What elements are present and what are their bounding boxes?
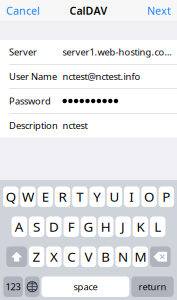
button[interactable]: H xyxy=(98,216,113,237)
button[interactable]: G xyxy=(81,216,96,237)
staticText: Q xyxy=(6,188,16,205)
staticText: L xyxy=(154,218,161,235)
button[interactable]: I xyxy=(124,186,139,207)
staticText: M xyxy=(134,248,146,265)
button[interactable]: Next keyboard xyxy=(25,276,39,297)
button[interactable]: C xyxy=(63,246,79,267)
button[interactable]: D xyxy=(46,216,62,237)
staticText: U xyxy=(109,188,119,205)
staticText: server1.web-hosting.com:… xyxy=(62,46,173,58)
button[interactable]: Z xyxy=(29,246,44,267)
staticText: V xyxy=(84,248,92,265)
staticText: S xyxy=(33,218,40,235)
button[interactable]: Shift xyxy=(6,246,27,267)
staticText: X xyxy=(50,248,58,265)
staticText: space xyxy=(73,280,97,293)
button[interactable]: Delete xyxy=(150,246,171,267)
button[interactable]: 123 xyxy=(3,276,23,297)
button[interactable]: O xyxy=(141,186,157,207)
staticText: F xyxy=(68,218,75,235)
button[interactable]: A xyxy=(12,216,27,237)
button[interactable]: space xyxy=(41,276,129,297)
button[interactable]: B xyxy=(98,246,113,267)
staticText: User Name xyxy=(9,70,57,83)
button[interactable]: L xyxy=(150,216,165,237)
staticText: Description xyxy=(9,119,58,132)
staticText: Cancel xyxy=(6,3,40,18)
staticText: R xyxy=(58,188,66,205)
staticText: 123 xyxy=(6,280,21,293)
button[interactable]: E xyxy=(37,186,53,207)
button[interactable]: Next xyxy=(141,0,177,21)
button[interactable]: M xyxy=(133,246,148,267)
staticText: G xyxy=(83,218,93,235)
button[interactable]: Y xyxy=(89,186,105,207)
button[interactable]: U xyxy=(107,186,122,207)
button[interactable]: Q xyxy=(3,186,18,207)
staticText: return xyxy=(138,280,166,293)
staticText: Y xyxy=(93,188,101,205)
staticText: J xyxy=(121,218,125,235)
staticText: T xyxy=(76,188,83,205)
button[interactable]: X xyxy=(46,246,62,267)
button[interactable]: Cancel xyxy=(0,0,46,21)
staticText: N xyxy=(118,248,128,265)
staticText: CalDAV xyxy=(69,3,107,18)
staticText: K xyxy=(136,218,144,235)
staticText: nctest@nctest.info xyxy=(62,70,140,83)
button[interactable]: W xyxy=(20,186,36,207)
staticText: I xyxy=(129,188,134,205)
staticText: O xyxy=(144,188,154,205)
button[interactable]: K xyxy=(133,216,148,237)
button[interactable]: F xyxy=(63,216,79,237)
staticText: Password xyxy=(9,95,51,107)
staticText: Z xyxy=(33,248,41,265)
button[interactable]: N xyxy=(115,246,131,267)
button[interactable]: R xyxy=(55,186,70,207)
staticText: B xyxy=(101,248,110,265)
button[interactable]: V xyxy=(81,246,96,267)
button[interactable]: S xyxy=(29,216,44,237)
button[interactable]: P xyxy=(159,186,174,207)
button[interactable]: T xyxy=(72,186,87,207)
staticText: D xyxy=(49,218,59,235)
staticText: W xyxy=(22,188,34,205)
staticText: Server xyxy=(9,46,37,58)
staticText: E xyxy=(42,188,49,205)
button[interactable]: return xyxy=(131,276,174,297)
button[interactable]: J xyxy=(115,216,131,237)
staticText: P xyxy=(162,188,170,205)
staticText: Next xyxy=(147,3,171,18)
staticText: A xyxy=(15,218,24,235)
staticText: H xyxy=(101,218,111,235)
staticText: nctest xyxy=(62,119,87,132)
staticText: C xyxy=(67,248,75,265)
